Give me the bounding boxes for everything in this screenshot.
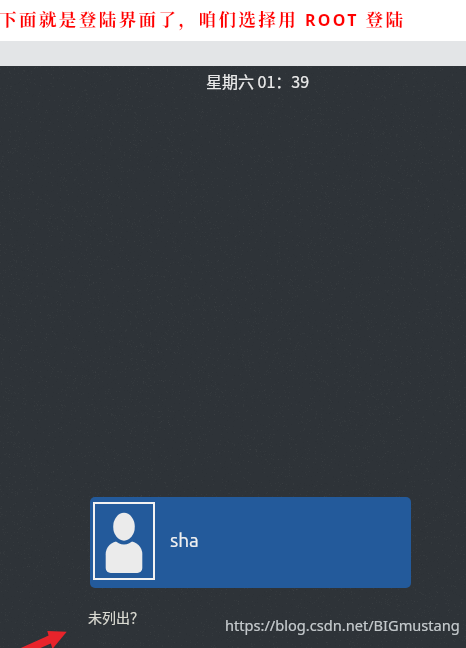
- staticText: 下面就是登陆界面了，咱们选择用 ROOT 登陆: [0, 6, 406, 31]
- button[interactable]: 未列出？: [88, 607, 144, 627]
- button[interactable]: sha: [90, 497, 411, 588]
- staticText: https://blog.csdn.net/BIGmustang: [225, 615, 460, 635]
- staticText: sha: [170, 529, 199, 550]
- staticText: 未列出？: [88, 607, 144, 627]
- staticText: 星期六 01：39: [206, 69, 310, 92]
